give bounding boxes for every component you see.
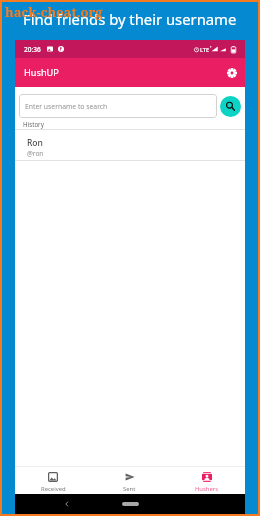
staticText: @ron (27, 149, 44, 158)
staticText: History (23, 120, 44, 128)
button[interactable]: Hushers (168, 467, 245, 494)
staticText: 20:36 (24, 45, 41, 54)
staticText: HushUP (24, 66, 59, 79)
staticText: Enter username to search (25, 102, 108, 111)
staticText: Sent (123, 485, 136, 493)
staticText: Hushers (195, 485, 219, 493)
button[interactable]: Sent (91, 467, 168, 494)
button[interactable]: Settings (221, 62, 243, 84)
button[interactable]: Search (220, 96, 241, 117)
staticText: hack-cheat.org (5, 3, 103, 21)
staticText: Find friends by their username (23, 9, 237, 29)
staticText: Ron (27, 137, 43, 149)
other: Back (63, 500, 71, 508)
button[interactable]: Enter username to search (19, 94, 217, 118)
staticText: LTE (200, 46, 209, 53)
button[interactable]: Ron (15, 130, 245, 160)
staticText: Received (41, 485, 66, 493)
button[interactable]: Received (15, 467, 91, 494)
